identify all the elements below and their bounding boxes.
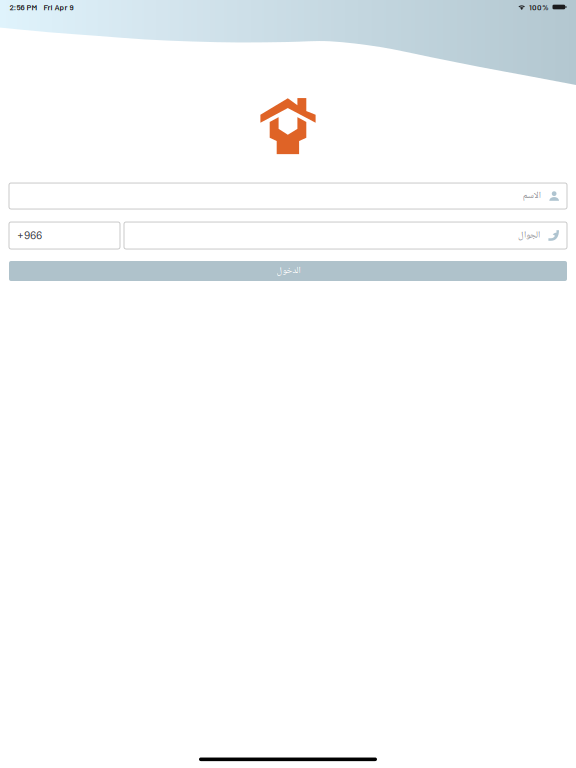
staticText: Fri Apr 9 [43, 2, 73, 12]
staticText: 100% [529, 2, 549, 12]
staticText: الجوال [517, 228, 539, 243]
staticText: الاسم [522, 188, 540, 204]
button[interactable]: الدخول [9, 261, 567, 281]
staticText: الدخول [276, 263, 300, 279]
staticText: +966 [17, 229, 42, 242]
staticText: 2:56 PM [9, 2, 37, 12]
